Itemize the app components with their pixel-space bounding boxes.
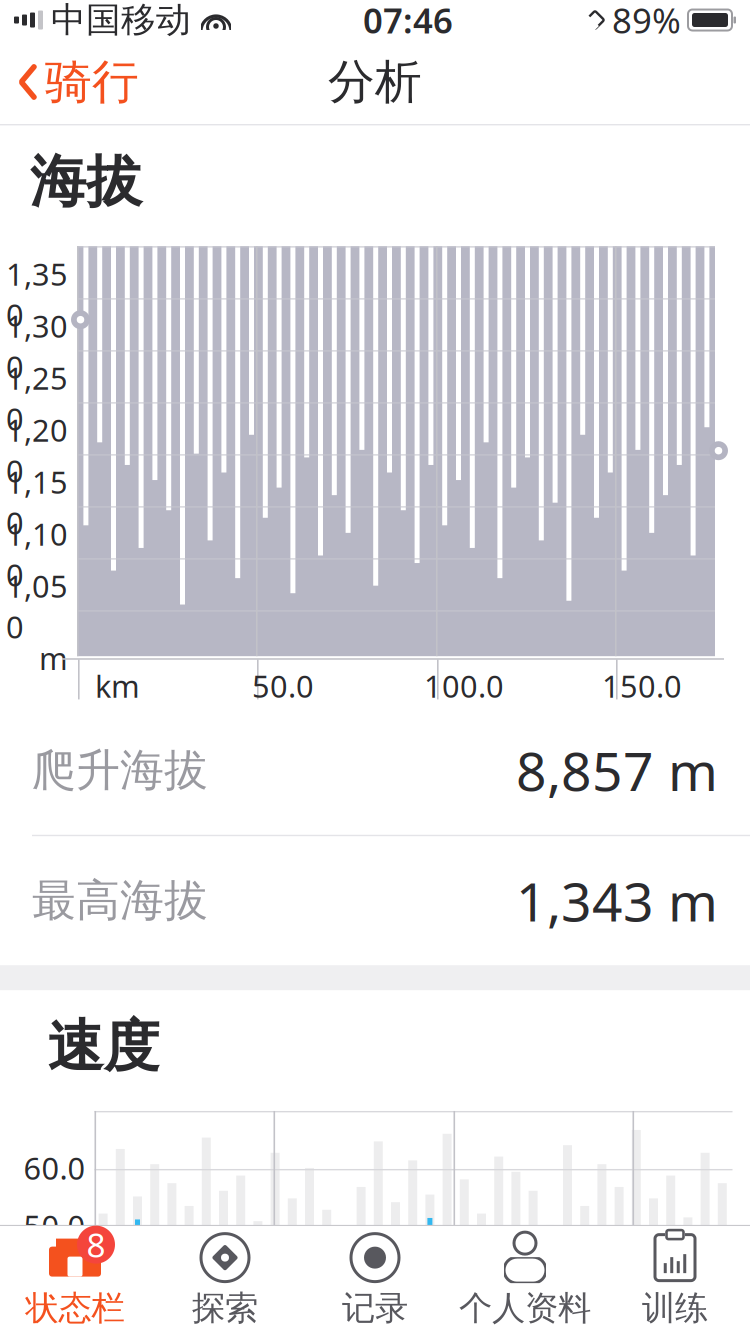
- staticText: 60.0: [23, 1148, 85, 1188]
- staticText: 个人资料: [459, 1288, 591, 1328]
- staticText: 速度: [47, 1012, 159, 1081]
- staticText: 1,300: [6, 305, 68, 387]
- staticText: m: [39, 638, 68, 678]
- staticText: 07:46: [363, 0, 453, 43]
- staticText: 记录: [342, 1288, 408, 1328]
- staticText: 爬升海拔: [32, 743, 208, 797]
- staticText: 1,250: [6, 357, 68, 439]
- button[interactable]: 8: [0, 1226, 150, 1334]
- staticText: 骑行: [45, 53, 139, 111]
- staticText: 1,050: [6, 565, 68, 647]
- staticText: 探索: [192, 1288, 258, 1328]
- staticText: 8: [86, 1222, 105, 1267]
- staticText: 1,200: [6, 409, 68, 491]
- button[interactable]: 记录: [300, 1226, 450, 1334]
- staticText: 最高海拔: [32, 874, 208, 928]
- button[interactable]: 训练: [600, 1226, 750, 1334]
- staticText: 150.0: [602, 665, 682, 706]
- staticText: 50.0: [252, 665, 314, 706]
- staticText: 中国移动: [51, 0, 191, 41]
- staticText: 训练: [642, 1288, 708, 1328]
- staticText: 50.0: [23, 1206, 85, 1246]
- staticText: 1,343 m: [516, 865, 718, 936]
- staticText: 1,150: [6, 461, 68, 543]
- staticText: 89%: [612, 0, 681, 43]
- staticText: 状态栏: [25, 1288, 124, 1328]
- staticText: 分析: [328, 53, 422, 111]
- button[interactable]: 骑行: [0, 45, 139, 119]
- staticText: 1,350: [6, 253, 68, 335]
- button[interactable]: 探索: [150, 1226, 300, 1334]
- staticText: 8,857 m: [516, 735, 718, 806]
- staticText: 100.0: [424, 665, 504, 706]
- button[interactable]: 个人资料: [450, 1226, 600, 1334]
- staticText: 海拔: [30, 147, 142, 216]
- staticText: km: [95, 665, 140, 706]
- staticText: 1,100: [6, 513, 68, 595]
